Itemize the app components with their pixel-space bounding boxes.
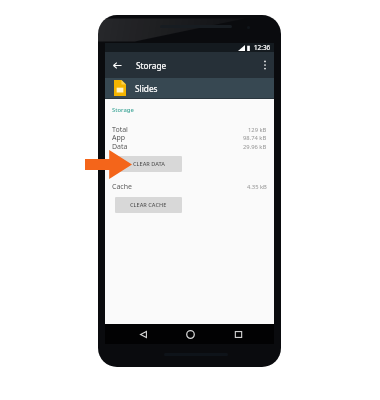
staticText: Storage	[112, 106, 134, 114]
staticText: 12:36	[254, 43, 271, 52]
staticText: Total	[112, 125, 128, 134]
button[interactable]: CLEAR CACHE	[115, 197, 182, 213]
button[interactable]: CLEAR DATA	[115, 156, 182, 172]
button[interactable]: Back	[127, 324, 159, 344]
button[interactable]: Recent apps	[222, 324, 254, 344]
staticText: Storage	[136, 60, 167, 71]
staticText: Data	[112, 142, 128, 151]
button[interactable]: Home	[174, 324, 206, 344]
staticText: 98.74 kB	[243, 134, 267, 142]
button[interactable]: More options	[256, 52, 274, 78]
staticText: App	[112, 133, 126, 142]
button[interactable]: Back	[105, 52, 129, 78]
staticText: 4.35 kB	[247, 183, 267, 191]
staticText: Slides	[135, 83, 158, 94]
staticText: Cache	[112, 182, 132, 191]
staticText: CLEAR DATA	[133, 160, 165, 168]
staticText: CLEAR CACHE	[130, 201, 167, 209]
staticText: 29.96 kB	[243, 143, 267, 151]
staticText: 129 kB	[248, 126, 267, 134]
